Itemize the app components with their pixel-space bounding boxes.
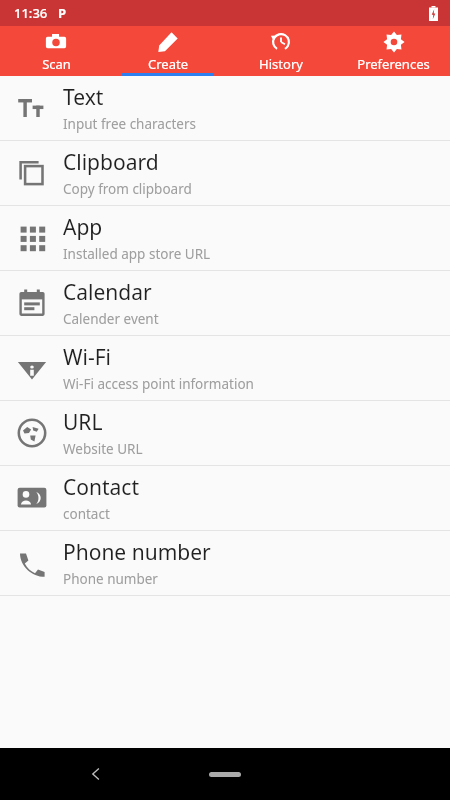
staticText: Wi-Fi — [63, 343, 112, 372]
staticText: P — [58, 4, 67, 22]
staticText: Preferences — [357, 55, 430, 73]
button[interactable]: History — [224, 26, 337, 76]
staticText: Wi-Fi access point information — [63, 375, 254, 393]
staticText: Calender event — [63, 310, 159, 328]
button[interactable]: Create — [112, 26, 224, 76]
staticText: Website URL — [63, 440, 143, 458]
staticText: Copy from clipboard — [63, 180, 192, 198]
button[interactable]: Back — [88, 766, 104, 782]
staticText: Scan — [42, 55, 71, 73]
staticText: Input free characters — [63, 115, 196, 133]
button[interactable]: App — [0, 206, 450, 270]
button[interactable]: Preferences — [337, 26, 450, 76]
staticText: Calendar — [63, 278, 152, 307]
button[interactable]: Home — [209, 772, 241, 777]
staticText: Contact — [63, 473, 139, 502]
staticText: History — [259, 55, 303, 73]
staticText: Create — [148, 55, 188, 73]
button[interactable]: Clipboard — [0, 141, 450, 205]
button[interactable]: URL — [0, 401, 450, 465]
button[interactable]: Text — [0, 76, 450, 140]
staticText: App — [63, 213, 103, 242]
staticText: Installed app store URL — [63, 245, 211, 263]
staticText: Text — [63, 83, 104, 112]
staticText: Phone number — [63, 570, 158, 588]
staticText: URL — [63, 408, 103, 437]
staticText: 11:36 — [14, 4, 48, 22]
button[interactable]: Phone number — [0, 531, 450, 595]
staticText: Clipboard — [63, 148, 159, 177]
staticText: contact — [63, 505, 110, 523]
button[interactable]: Contact — [0, 466, 450, 530]
staticText: Phone number — [63, 538, 211, 567]
button[interactable]: Wi-Fi — [0, 336, 450, 400]
button[interactable]: Scan — [0, 26, 112, 76]
button[interactable]: Calendar — [0, 271, 450, 335]
